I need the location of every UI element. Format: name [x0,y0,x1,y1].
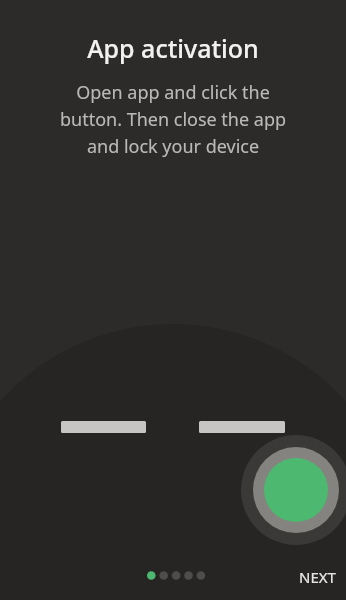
staticText: NEXT [299,567,336,587]
button[interactable]: NEXT [292,562,343,592]
staticText: App activation [0,31,346,65]
button[interactable]: Page 1 of 5 [143,567,202,584]
staticText: Open app and click the button. Then clos… [16,80,330,158]
